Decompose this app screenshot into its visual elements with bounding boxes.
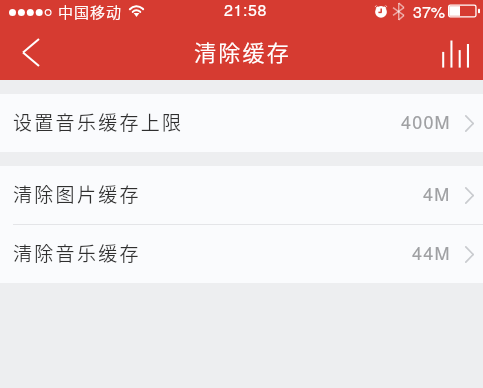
staticText: 44M [412, 239, 451, 265]
button[interactable]: Back [0, 28, 54, 80]
staticText: 清除图片缓存 [13, 180, 141, 208]
staticText: 37% [413, 0, 446, 23]
button[interactable]: 清除图片缓存 [0, 166, 483, 224]
staticText: 清除缓存 [194, 35, 291, 67]
button[interactable]: 设置音乐缓存上限 [0, 94, 483, 152]
staticText: 设置音乐缓存上限 [13, 108, 184, 136]
button[interactable]: Equalizer [435, 28, 483, 80]
staticText: 400M [401, 108, 451, 134]
staticText: 中国移动 [58, 1, 123, 23]
staticText: 21:58 [224, 0, 268, 21]
staticText: 4M [423, 180, 451, 206]
staticText: 清除音乐缓存 [13, 239, 141, 267]
button[interactable]: 清除音乐缓存 [0, 225, 483, 283]
